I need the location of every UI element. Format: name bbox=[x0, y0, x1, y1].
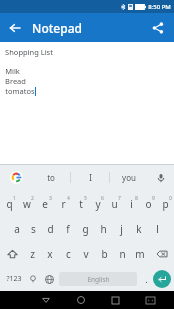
staticText: v bbox=[83, 247, 89, 261]
button[interactable]: e bbox=[36, 193, 54, 215]
staticText: f bbox=[66, 222, 70, 236]
button[interactable]: ?123 bbox=[3, 268, 25, 290]
button[interactable]: v bbox=[77, 243, 95, 265]
staticText: Milk bbox=[5, 66, 20, 76]
staticText: Notepad bbox=[32, 20, 82, 36]
button[interactable]: h bbox=[94, 218, 112, 240]
staticText: b bbox=[101, 247, 108, 261]
button[interactable]: u bbox=[106, 193, 123, 215]
staticText: k bbox=[136, 222, 142, 236]
staticText: u bbox=[111, 197, 118, 211]
staticText: Bread bbox=[5, 76, 26, 86]
staticText: 5 bbox=[84, 195, 87, 202]
button[interactable]: you bbox=[110, 165, 148, 190]
button[interactable]: g bbox=[76, 218, 94, 240]
button[interactable]: Emoji bbox=[25, 268, 41, 290]
button[interactable]: n bbox=[113, 243, 131, 265]
staticText: o bbox=[145, 197, 152, 211]
button[interactable]: Keyboard active bbox=[133, 291, 168, 309]
staticText: m bbox=[135, 247, 145, 261]
button[interactable]: b bbox=[95, 243, 113, 265]
staticText: . bbox=[145, 273, 148, 285]
staticText: 9 bbox=[152, 195, 155, 202]
button[interactable]: k bbox=[130, 218, 148, 240]
staticText: 1 bbox=[13, 195, 16, 202]
button[interactable]: Backspace bbox=[149, 243, 174, 265]
staticText: q bbox=[6, 197, 13, 211]
staticText: l bbox=[156, 222, 159, 236]
button[interactable]: t bbox=[72, 193, 89, 215]
staticText: I bbox=[89, 172, 92, 183]
button[interactable]: Home bbox=[63, 291, 98, 309]
staticText: w bbox=[23, 197, 31, 211]
staticText: x bbox=[47, 247, 53, 261]
button[interactable]: q bbox=[0, 193, 18, 215]
button[interactable]: w bbox=[18, 193, 36, 215]
staticText: tomatos bbox=[5, 86, 35, 96]
staticText: i bbox=[130, 197, 133, 211]
button[interactable]: x bbox=[41, 243, 59, 265]
staticText: y bbox=[95, 197, 101, 211]
staticText: d bbox=[47, 222, 54, 236]
staticText: English bbox=[87, 275, 110, 284]
staticText: 7 bbox=[118, 195, 121, 202]
button[interactable]: j bbox=[112, 218, 130, 240]
staticText: g bbox=[82, 222, 89, 236]
button[interactable]: y bbox=[89, 193, 106, 215]
button[interactable]: p bbox=[157, 193, 174, 215]
staticText: s bbox=[31, 222, 36, 236]
button[interactable]: Recents bbox=[98, 291, 133, 309]
button[interactable]: Change language bbox=[41, 268, 57, 290]
staticText: 0 bbox=[169, 195, 172, 202]
button[interactable]: z bbox=[24, 243, 41, 265]
button[interactable]: Shift bbox=[0, 243, 24, 265]
button[interactable]: i bbox=[123, 193, 140, 215]
button[interactable]: l bbox=[148, 218, 166, 240]
button[interactable]: Voice input bbox=[148, 165, 174, 190]
staticText: 3 bbox=[49, 195, 52, 202]
staticText: 4 bbox=[67, 195, 70, 202]
button[interactable]: c bbox=[59, 243, 77, 265]
button[interactable]: I bbox=[71, 165, 109, 190]
staticText: to bbox=[47, 172, 55, 183]
button[interactable]: Back bbox=[4, 17, 26, 39]
staticText: a bbox=[14, 222, 20, 236]
button[interactable]: Shopping List bbox=[5, 47, 174, 164]
button[interactable]: d bbox=[42, 218, 59, 240]
button[interactable]: o bbox=[140, 193, 157, 215]
button[interactable]: f bbox=[59, 218, 76, 240]
staticText: 6 bbox=[101, 195, 104, 202]
button[interactable]: Enter bbox=[153, 270, 171, 288]
button[interactable]: s bbox=[25, 218, 42, 240]
staticText: you bbox=[122, 172, 136, 183]
staticText: c bbox=[66, 247, 71, 261]
staticText: z bbox=[30, 247, 35, 261]
staticText: 2 bbox=[31, 195, 34, 202]
staticText: p bbox=[162, 197, 169, 211]
button[interactable]: Google bbox=[0, 165, 32, 190]
staticText: Shopping List bbox=[5, 47, 53, 57]
button[interactable]: English bbox=[59, 272, 137, 286]
staticText: n bbox=[119, 247, 126, 261]
button[interactable]: m bbox=[131, 243, 149, 265]
button[interactable]: r bbox=[54, 193, 72, 215]
button[interactable]: to bbox=[32, 165, 70, 190]
staticText: j bbox=[120, 222, 123, 236]
button[interactable]: Back bbox=[28, 291, 63, 309]
staticText: 8:50 PM bbox=[148, 3, 171, 11]
staticText: ?123 bbox=[6, 274, 22, 284]
button[interactable]: . bbox=[139, 268, 153, 290]
button[interactable]: a bbox=[8, 218, 25, 240]
staticText: 8 bbox=[135, 195, 138, 202]
button[interactable]: Share bbox=[147, 17, 169, 39]
staticText: e bbox=[42, 197, 48, 211]
staticText: h bbox=[100, 222, 107, 236]
staticText: t bbox=[79, 197, 83, 211]
staticText: r bbox=[61, 197, 66, 211]
